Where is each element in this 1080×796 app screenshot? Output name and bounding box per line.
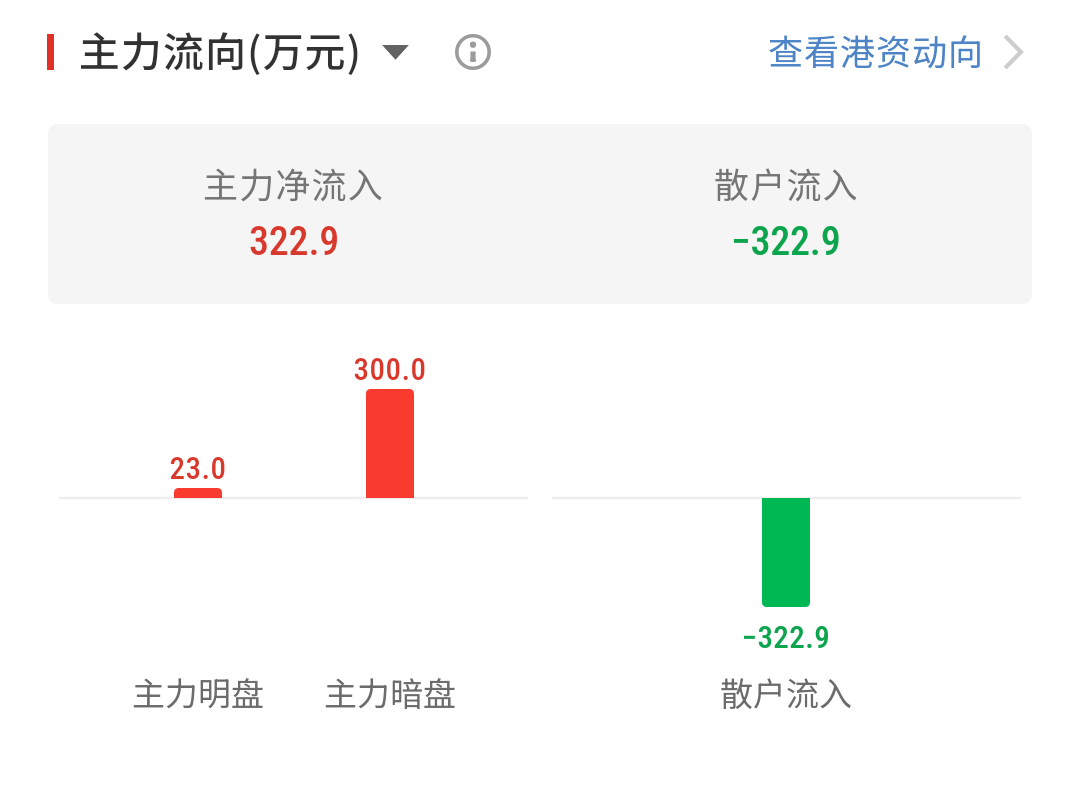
staticText: 主力净流入 — [203, 157, 385, 208]
staticText: 322.9 — [249, 218, 340, 265]
staticText: 主力明盘 — [88, 668, 308, 716]
staticText: 主力流向(万元) — [79, 19, 363, 78]
staticText: 散户流入 — [676, 668, 896, 716]
staticText: −322.9 — [731, 218, 841, 265]
button[interactable]: 指标说明 — [451, 30, 495, 74]
button[interactable]: 主力流向(万元) — [72, 14, 414, 82]
staticText: 散户流入 — [714, 157, 859, 208]
staticText: 主力暗盘 — [280, 668, 500, 716]
button[interactable]: 查看港资动向 — [762, 13, 1071, 85]
staticText: −322.9 — [686, 619, 886, 655]
staticText: 23.0 — [98, 450, 298, 486]
staticText: 查看港资动向 — [768, 24, 985, 75]
staticText: 300.0 — [290, 351, 490, 387]
